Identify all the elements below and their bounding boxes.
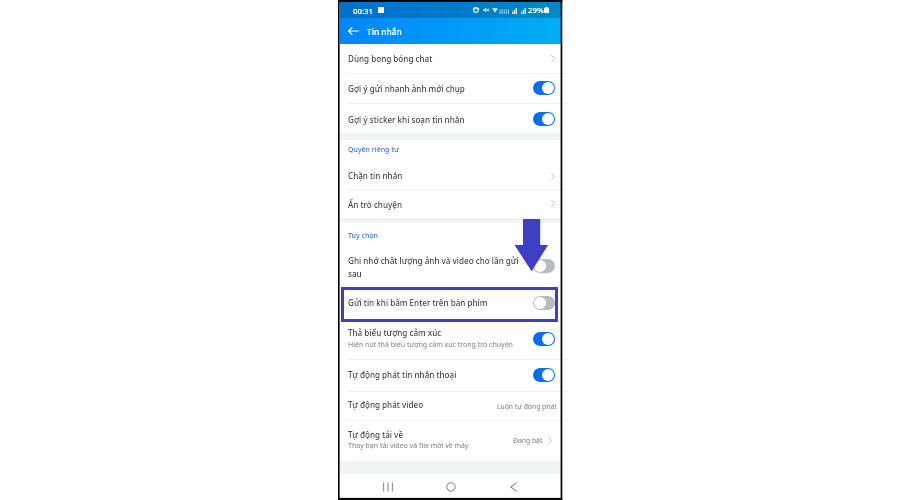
staticText: Luôn tự động phát bbox=[497, 402, 557, 411]
staticText: Tự động tải về bbox=[348, 429, 404, 440]
staticText: Dùng bong bóng chat bbox=[348, 53, 433, 64]
staticText: Ghi nhớ chất lượng ảnh và video cho lần … bbox=[348, 255, 519, 266]
staticText: Thay bạn tải video và file mới về máy bbox=[348, 441, 469, 451]
button[interactable]: Thả biểu tượng cảm xúc bbox=[340, 322, 561, 359]
staticText: Tùy chọn bbox=[348, 231, 378, 241]
staticText: 29% bbox=[528, 5, 544, 16]
button[interactable]: Gợi ý gửi nhanh ảnh mới chụp bbox=[340, 73, 561, 103]
button[interactable]: On bbox=[533, 332, 555, 346]
button[interactable]: On bbox=[533, 368, 555, 382]
staticText: Tự động phát video bbox=[348, 399, 424, 410]
button[interactable]: On bbox=[533, 112, 555, 126]
staticText: Gợi ý gửi nhanh ảnh mới chụp bbox=[348, 83, 465, 94]
button[interactable]: On bbox=[533, 81, 555, 95]
staticText: Ẩn trò chuyện bbox=[348, 199, 403, 210]
button[interactable]: Off bbox=[533, 259, 555, 273]
staticText: Chặn tin nhắn bbox=[348, 170, 403, 181]
button[interactable]: Tự động tải về bbox=[340, 421, 561, 461]
staticText: Thả biểu tượng cảm xúc bbox=[348, 327, 442, 338]
staticText: Gửi tin khi bấm Enter trên bàn phím bbox=[348, 297, 488, 308]
button[interactable]: Gửi tin khi bấm Enter trên bàn phím bbox=[340, 287, 561, 322]
button[interactable]: Back bbox=[502, 476, 524, 498]
staticText: 00:31 bbox=[353, 6, 373, 17]
button[interactable]: Ghi nhớ chất lượng ảnh và video cho lần … bbox=[340, 248, 561, 287]
staticText: Tự động phát tin nhắn thoại bbox=[348, 369, 457, 380]
button[interactable]: Gợi ý sticker khi soạn tin nhắn bbox=[340, 104, 561, 133]
staticText: Tin nhắn bbox=[367, 26, 402, 37]
button[interactable]: Home bbox=[440, 476, 462, 498]
staticText: sau bbox=[348, 268, 362, 279]
staticText: Gợi ý sticker khi soạn tin nhắn bbox=[348, 114, 465, 125]
button[interactable]: Chặn tin nhắn bbox=[340, 164, 561, 189]
staticText: Quyền riêng tư bbox=[348, 145, 399, 155]
button[interactable]: Ẩn trò chuyện bbox=[340, 189, 561, 218]
staticText: Đang bật bbox=[513, 436, 543, 445]
button[interactable]: Recent apps bbox=[377, 476, 399, 498]
button[interactable]: Tự động phát video bbox=[340, 392, 561, 420]
button[interactable]: Dùng bong bóng chat bbox=[340, 44, 561, 73]
button[interactable]: Off bbox=[533, 296, 555, 310]
staticText: Hiện nút thả biểu tượng cảm xúc trong tr… bbox=[348, 340, 513, 350]
button[interactable]: Back bbox=[345, 23, 361, 39]
button[interactable]: Tự động phát tin nhắn thoại bbox=[340, 359, 561, 390]
